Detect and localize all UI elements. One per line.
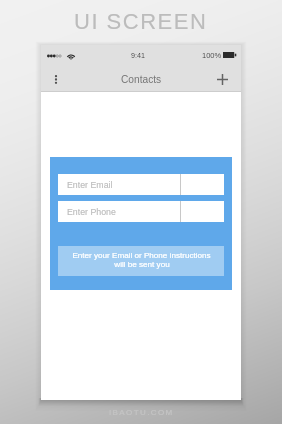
button[interactable]: Add contact: [211, 68, 233, 90]
staticText: Enter Phone: [67, 207, 116, 217]
button[interactable]: Enter Phone: [58, 201, 224, 222]
staticText: Enter Email: [67, 180, 113, 190]
staticText: 9:41: [131, 51, 145, 59]
staticText: Enter your Email or Phone instructions: [72, 251, 211, 260]
button[interactable]: Enter Email: [58, 174, 224, 195]
button[interactable]: More options: [47, 67, 65, 91]
staticText: UI SCREEN: [74, 9, 208, 34]
staticText: will be sent you: [114, 260, 170, 269]
button[interactable]: Enter your Email or Phone instructions: [58, 246, 224, 276]
staticText: 100%: [202, 51, 222, 59]
staticText: IBAOTU.COM: [109, 408, 174, 417]
staticText: Contacts: [121, 74, 162, 85]
